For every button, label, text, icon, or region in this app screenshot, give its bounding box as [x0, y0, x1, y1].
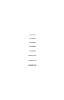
staticText: Location	[28, 54, 36, 57]
staticText: Location	[28, 42, 35, 44]
staticText: Location	[28, 45, 35, 47]
staticText: Location	[28, 59, 36, 61]
staticText: Location	[28, 38, 35, 40]
staticText: Location	[28, 49, 35, 52]
staticText: Location	[28, 63, 36, 66]
staticText: Location	[28, 34, 35, 36]
